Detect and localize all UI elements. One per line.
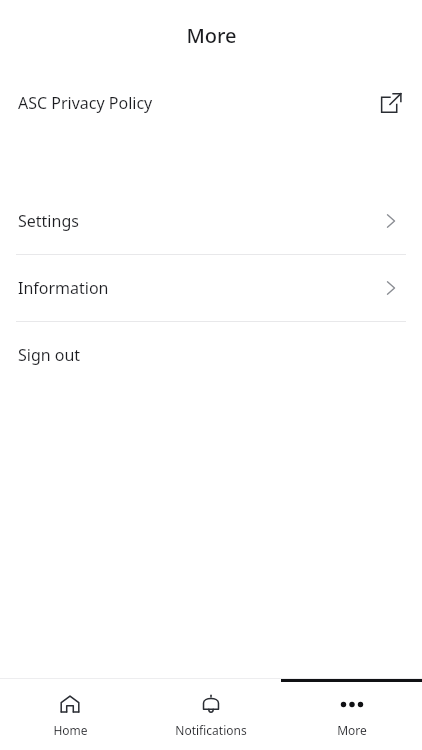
button[interactable]: Home <box>0 679 140 750</box>
button[interactable]: Information <box>0 255 422 321</box>
staticText: Home <box>53 722 88 738</box>
staticText: Information <box>18 277 109 299</box>
button[interactable]: Open ASC Privacy Policy in browser <box>378 90 404 116</box>
button[interactable]: Notifications <box>140 679 281 750</box>
staticText: Notifications <box>175 722 247 738</box>
staticText: ASC Privacy Policy <box>18 92 153 114</box>
staticText: Sign out <box>18 344 81 366</box>
button[interactable]: Settings <box>0 188 422 254</box>
staticText: More <box>337 722 367 738</box>
button[interactable]: More <box>281 679 422 750</box>
staticText: Settings <box>18 210 79 232</box>
button[interactable]: ASC Privacy Policy <box>0 70 422 136</box>
staticText: More <box>186 22 237 49</box>
button[interactable]: Sign out <box>0 322 422 388</box>
